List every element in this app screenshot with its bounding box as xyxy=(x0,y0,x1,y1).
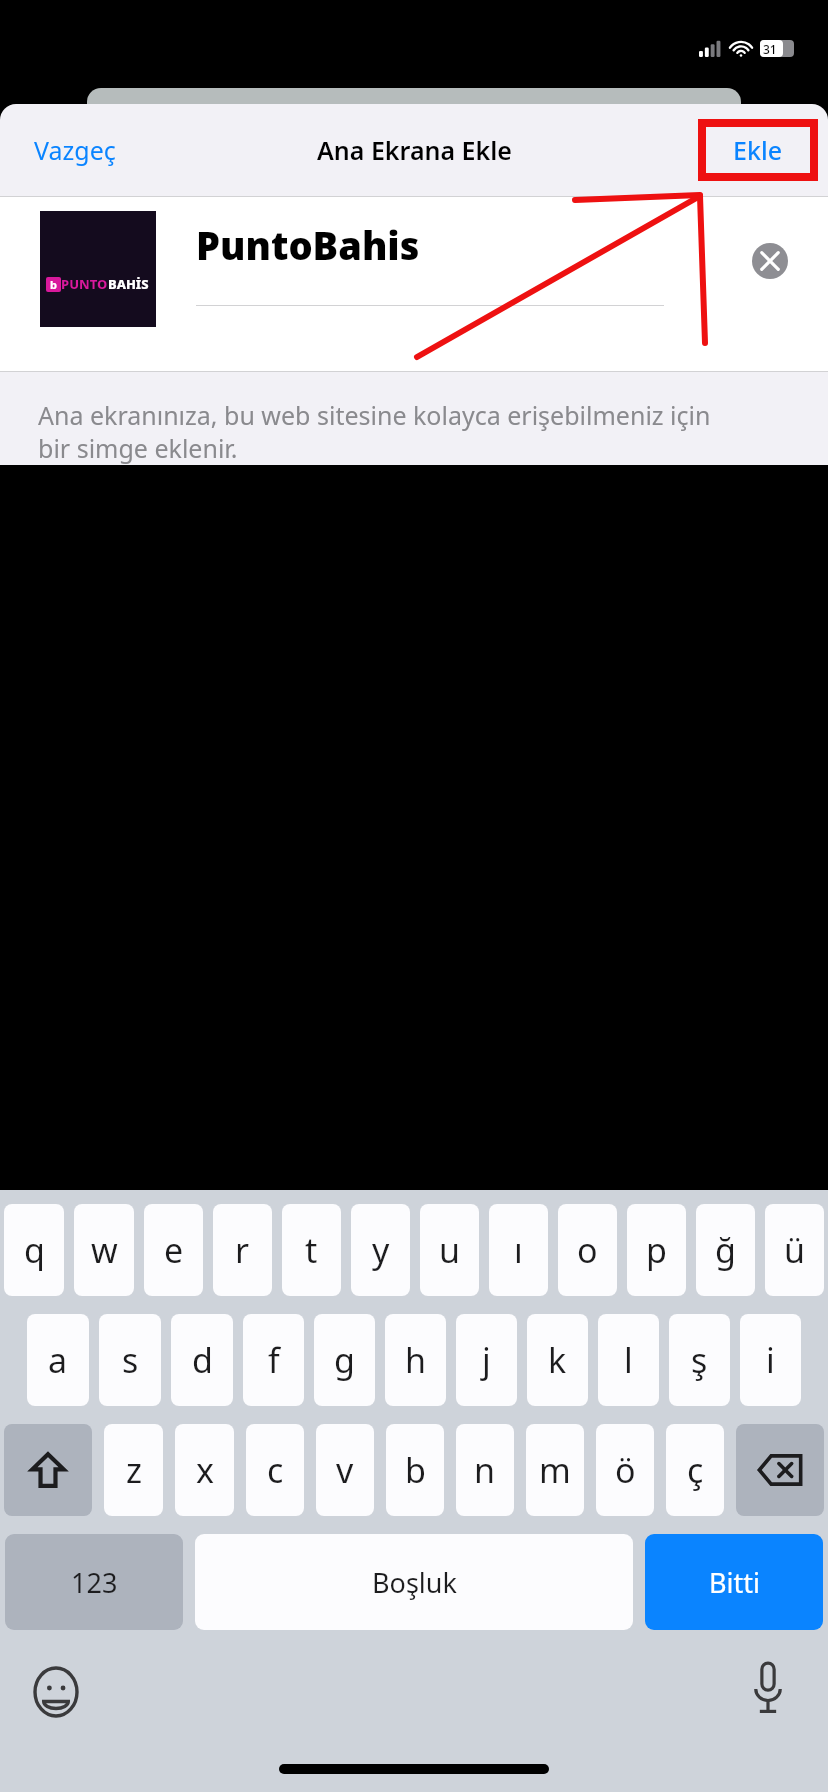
button[interactable]: w xyxy=(74,1204,134,1296)
button[interactable]: j xyxy=(456,1314,517,1406)
button[interactable]: l xyxy=(598,1314,659,1406)
staticText: PuntoBahis xyxy=(196,219,420,271)
staticText: 123 xyxy=(71,1564,118,1601)
button[interactable]: m xyxy=(526,1424,584,1516)
button[interactable]: Ekle xyxy=(698,119,818,181)
button[interactable]: x xyxy=(175,1424,234,1516)
staticText: s xyxy=(122,1337,139,1383)
button[interactable]: ı xyxy=(489,1204,548,1296)
button[interactable]: Shift xyxy=(4,1424,92,1516)
button[interactable]: Emoji xyxy=(28,1664,84,1720)
button[interactable]: g xyxy=(314,1314,375,1406)
staticText: Boşluk xyxy=(372,1564,457,1601)
staticText: d xyxy=(192,1337,213,1383)
staticText: b xyxy=(405,1447,426,1493)
staticText: y xyxy=(372,1227,390,1273)
button[interactable]: e xyxy=(144,1204,203,1296)
button[interactable]: Sil xyxy=(736,1424,824,1516)
staticText: BAHİS xyxy=(108,275,149,293)
button[interactable]: c xyxy=(246,1424,304,1516)
button[interactable]: n xyxy=(456,1424,514,1516)
staticText: u xyxy=(439,1227,461,1273)
staticText: PUNTO xyxy=(61,275,108,293)
staticText: m xyxy=(539,1447,571,1493)
button[interactable]: ü xyxy=(765,1204,824,1296)
button[interactable]: Dikte xyxy=(740,1660,796,1716)
button[interactable]: z xyxy=(104,1424,163,1516)
button[interactable]: d xyxy=(171,1314,233,1406)
staticText: ç xyxy=(687,1447,704,1493)
button[interactable]: y xyxy=(351,1204,410,1296)
staticText: ı xyxy=(514,1227,523,1273)
button[interactable]: v xyxy=(316,1424,374,1516)
button[interactable]: Bitti xyxy=(645,1534,823,1630)
button[interactable]: Temizle xyxy=(752,243,788,279)
button[interactable]: k xyxy=(527,1314,588,1406)
staticText: Ana ekranınıza, bu web sitesine kolayca … xyxy=(38,398,728,465)
staticText: v xyxy=(336,1447,354,1493)
staticText: a xyxy=(48,1337,68,1383)
button[interactable]: o xyxy=(558,1204,617,1296)
staticText: h xyxy=(405,1337,427,1383)
staticText: l xyxy=(624,1337,633,1383)
button[interactable]: ö xyxy=(596,1424,654,1516)
staticText: Ana Ekrana Ekle xyxy=(317,133,512,167)
button[interactable]: ş xyxy=(669,1314,730,1406)
staticText: o xyxy=(577,1227,598,1273)
staticText: z xyxy=(126,1447,142,1493)
button[interactable]: f xyxy=(243,1314,304,1406)
staticText: r xyxy=(235,1227,250,1273)
button[interactable]: Vazgeç xyxy=(22,125,128,175)
staticText: g xyxy=(334,1337,355,1383)
button[interactable]: h xyxy=(385,1314,446,1406)
staticText: p xyxy=(646,1227,667,1273)
staticText: f xyxy=(268,1337,280,1383)
staticText: i xyxy=(766,1337,775,1383)
button[interactable]: ğ xyxy=(696,1204,755,1296)
button[interactable]: b xyxy=(386,1424,444,1516)
staticText: c xyxy=(267,1447,284,1493)
button[interactable]: s xyxy=(99,1314,161,1406)
button[interactable]: r xyxy=(213,1204,272,1296)
button[interactable]: i xyxy=(740,1314,801,1406)
staticText: Ekle xyxy=(733,133,783,167)
staticText: Vazgeç xyxy=(34,133,116,167)
button[interactable]: Boşluk xyxy=(195,1534,633,1630)
staticText: ü xyxy=(784,1227,806,1273)
button[interactable]: 123 xyxy=(5,1534,183,1630)
button[interactable]: q xyxy=(4,1204,64,1296)
staticText: w xyxy=(91,1227,118,1273)
staticText: ö xyxy=(615,1447,636,1493)
staticText: k xyxy=(548,1337,567,1383)
staticText: ğ xyxy=(715,1227,736,1273)
staticText: j xyxy=(482,1337,491,1383)
staticText: 31 xyxy=(763,41,777,57)
button[interactable]: a xyxy=(27,1314,89,1406)
staticText: q xyxy=(24,1227,45,1273)
staticText: ş xyxy=(691,1337,708,1383)
staticText: n xyxy=(474,1447,496,1493)
button[interactable]: u xyxy=(420,1204,479,1296)
staticText: Bitti xyxy=(709,1564,760,1601)
staticText: e xyxy=(164,1227,184,1273)
staticText: x xyxy=(196,1447,214,1493)
button[interactable]: p xyxy=(627,1204,686,1296)
button[interactable]: t xyxy=(282,1204,341,1296)
staticText: t xyxy=(305,1227,318,1273)
staticText: b xyxy=(50,277,57,292)
button[interactable]: ç xyxy=(666,1424,724,1516)
